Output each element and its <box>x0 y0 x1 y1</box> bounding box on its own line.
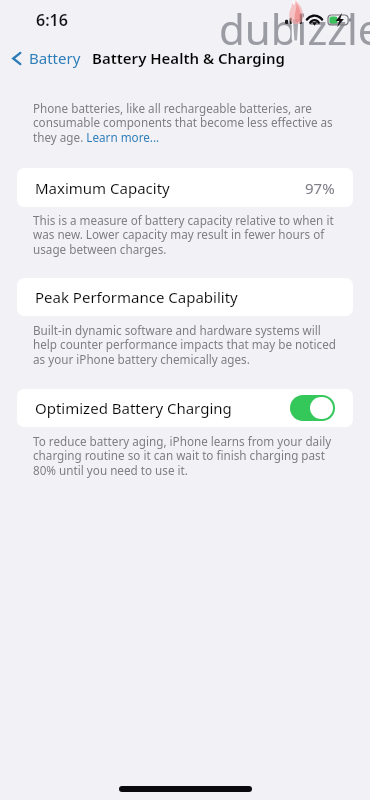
staticText: To reduce battery aging, iPhone learns f… <box>33 433 336 479</box>
staticText: Built-in dynamic software and hardware s… <box>33 322 336 368</box>
button[interactable]: Optimized Battery Charging <box>17 389 353 427</box>
staticText: Battery <box>29 48 81 68</box>
button[interactable]: Maximum Capacity <box>17 168 353 207</box>
other: Back <box>11 50 22 67</box>
button[interactable]: Optimized Battery Charging toggle <box>290 395 335 421</box>
staticText: 6:16 <box>36 9 68 31</box>
staticText: dubizzle <box>219 0 370 57</box>
staticText: Maximum Capacity <box>35 178 170 198</box>
staticText: This is a measure of battery capacity re… <box>33 212 336 258</box>
button[interactable]: Back <box>7 46 85 70</box>
staticText: 97% <box>305 178 335 198</box>
button[interactable]: Peak Performance Capability <box>17 278 353 316</box>
staticText: Optimized Battery Charging <box>35 398 232 418</box>
staticText: Phone batteries, like all rechargeable b… <box>33 100 336 146</box>
staticText: Peak Performance Capability <box>35 287 238 307</box>
staticText: Battery Health & Charging <box>92 48 285 68</box>
